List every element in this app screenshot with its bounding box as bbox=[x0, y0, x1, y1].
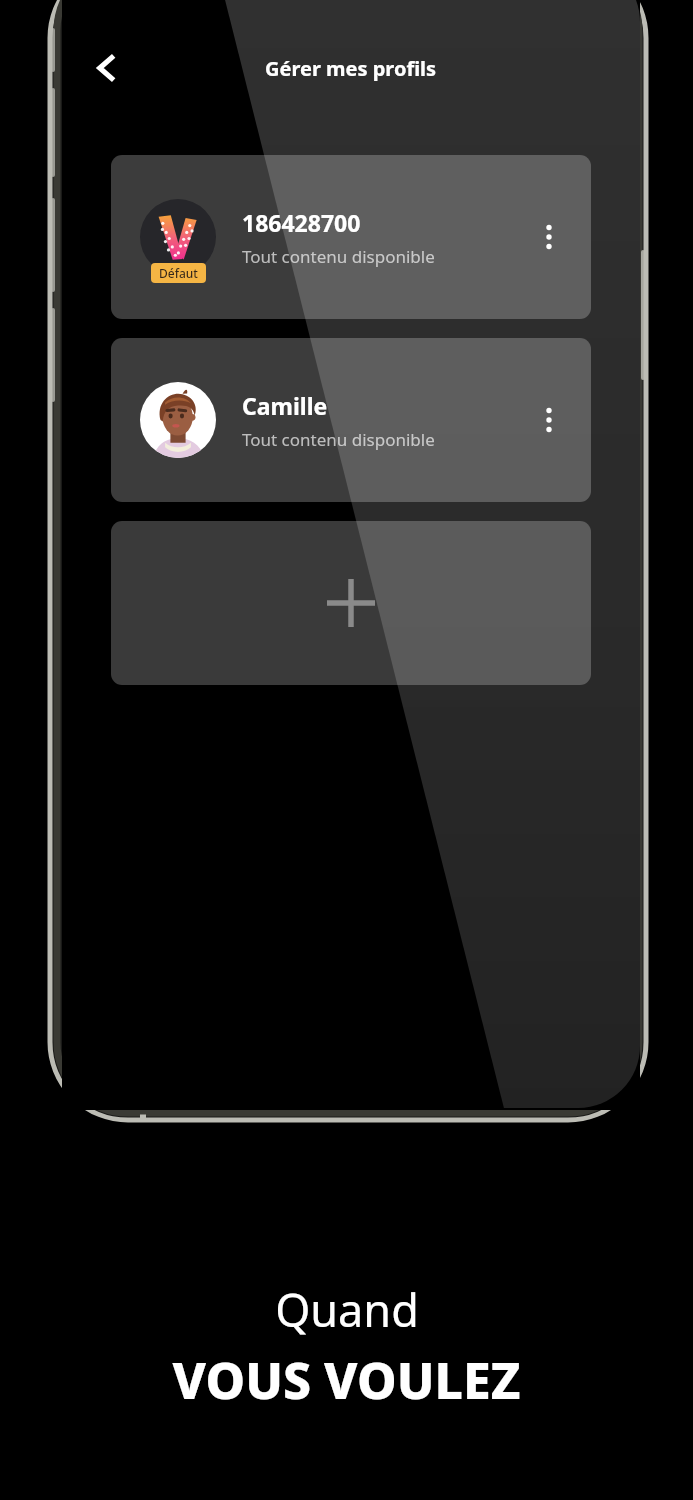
button[interactable]: Add profile bbox=[111, 521, 591, 685]
staticText: Gérer mes profils bbox=[265, 55, 437, 82]
staticText: Défaut bbox=[159, 265, 198, 281]
staticText: 186428700 bbox=[242, 207, 361, 238]
button[interactable]: Camille bbox=[111, 338, 591, 502]
staticText: Tout contenu disponible bbox=[242, 245, 435, 268]
button[interactable]: More options bbox=[527, 398, 571, 442]
button[interactable]: More options bbox=[527, 215, 571, 259]
button[interactable]: Back bbox=[78, 40, 134, 96]
staticText: Quand bbox=[275, 1279, 419, 1340]
button[interactable]: Défaut bbox=[111, 155, 591, 319]
staticText: VOUS VOULEZ bbox=[172, 1346, 521, 1414]
staticText: Camille bbox=[242, 390, 328, 421]
staticText: Tout contenu disponible bbox=[242, 428, 435, 451]
